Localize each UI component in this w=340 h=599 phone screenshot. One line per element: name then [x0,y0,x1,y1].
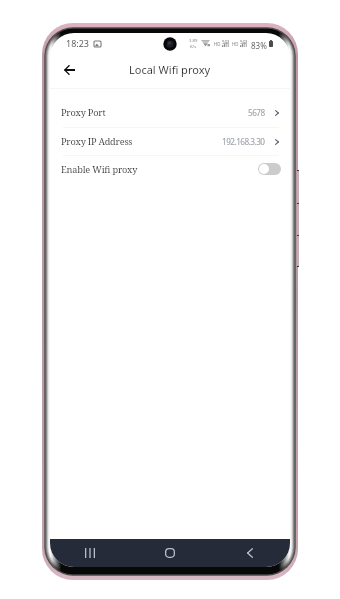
button[interactable]: Recent apps [50,539,130,567]
staticText: 3.89 [189,38,198,44]
staticText: 5G [240,39,246,45]
staticText: HD [232,41,239,47]
staticText: Local Wifi proxy [129,62,211,77]
staticText: HD [214,41,221,47]
button[interactable]: Home [130,539,210,567]
staticText: 5678 [248,107,265,118]
button[interactable]: Back [56,57,82,83]
staticText: 5G [222,39,228,45]
button[interactable]: Enable Wifi proxy [50,155,290,184]
staticText: 18:23 [66,37,90,49]
staticText: Proxy IP Address [61,135,133,148]
button[interactable]: Back [210,539,290,567]
staticText: Enable Wifi proxy [61,163,138,176]
staticText: 83% [251,40,267,51]
button[interactable]: Proxy Port [50,98,290,126]
staticText: Proxy Port [61,106,106,119]
button[interactable]: Proxy IP Address [50,127,290,155]
staticText: 192.168.3.30 [222,136,265,147]
staticText: K/s [190,44,197,50]
